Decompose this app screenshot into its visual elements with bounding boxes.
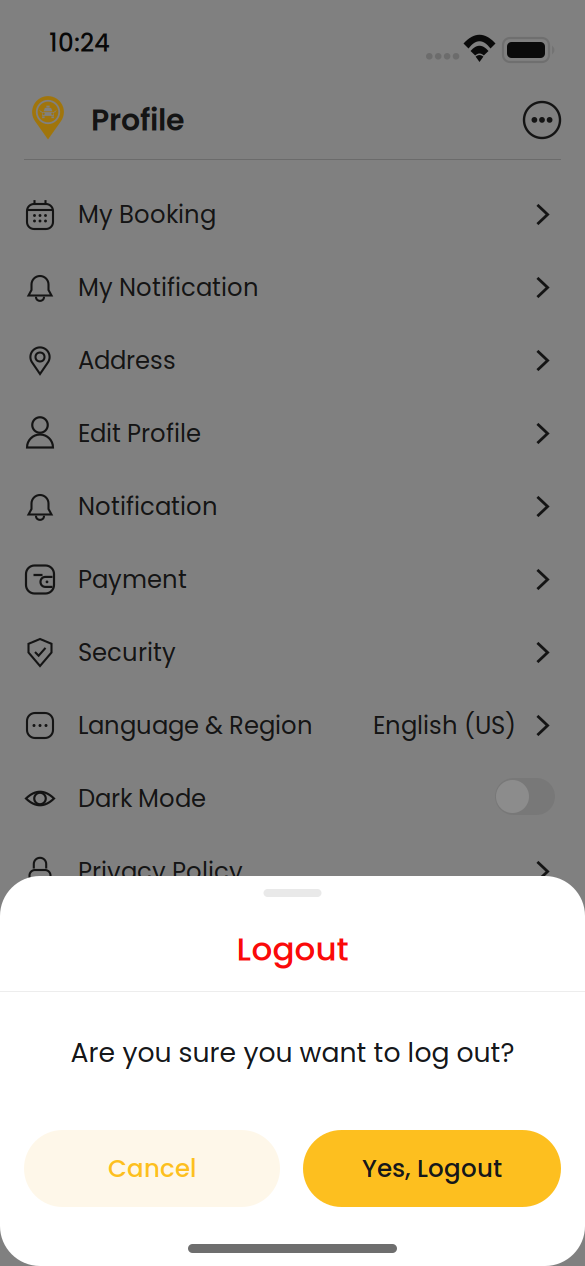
button[interactable]: Language & Region: [0, 689, 585, 762]
staticText: Logout: [236, 926, 348, 972]
staticText: English (US): [373, 708, 516, 742]
staticText: Are you sure you want to log out?: [70, 1034, 514, 1071]
button[interactable]: Payment: [0, 543, 585, 616]
button[interactable]: Yes, Logout: [303, 1130, 561, 1207]
staticText: Security: [78, 635, 176, 669]
button[interactable]: Cancel: [24, 1130, 280, 1207]
button[interactable]: Address: [0, 324, 585, 397]
button[interactable]: Edit Profile: [0, 397, 585, 470]
button[interactable]: Privacy Policy: [0, 835, 585, 908]
staticText: Notification: [78, 489, 218, 523]
staticText: Yes, Logout: [362, 1151, 502, 1186]
staticText: Payment: [78, 562, 187, 596]
button[interactable]: My Notification: [0, 251, 585, 324]
staticText: Privacy Policy: [78, 854, 243, 888]
staticText: Address: [78, 343, 176, 377]
staticText: Cancel: [108, 1151, 196, 1186]
staticText: My Booking: [78, 197, 216, 231]
button[interactable]: Security: [0, 616, 585, 689]
button[interactable]: More options: [519, 97, 565, 143]
staticText: Dark Mode: [78, 781, 206, 815]
button[interactable]: Notification: [0, 470, 585, 543]
button[interactable]: My Booking: [0, 178, 585, 251]
staticText: Edit Profile: [78, 416, 201, 450]
staticText: Profile: [91, 99, 185, 141]
staticText: My Notification: [78, 270, 259, 304]
staticText: 10:24: [49, 26, 110, 60]
staticText: Language & Region: [78, 708, 313, 742]
button[interactable]: Dark Mode: [0, 762, 585, 835]
